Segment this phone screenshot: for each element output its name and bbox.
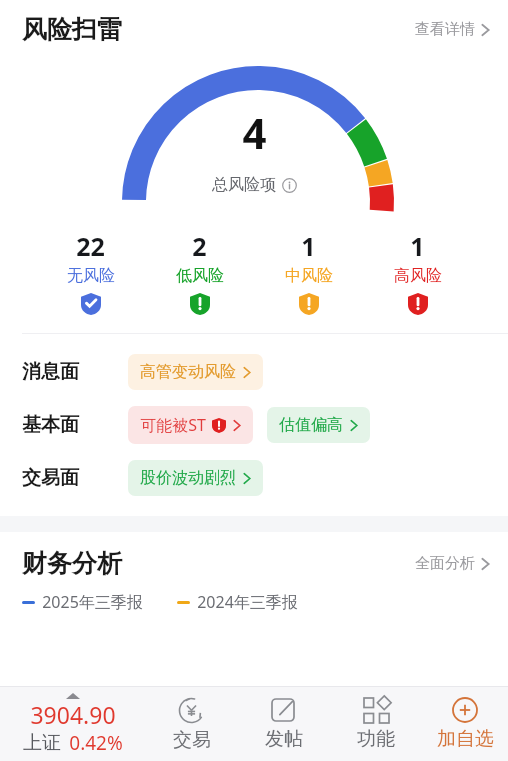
button[interactable]: 功能 [330,698,422,751]
staticText: 1 [301,229,316,263]
staticText: 高管变动风险 [140,362,236,382]
staticText: 股价波动剧烈 [140,468,236,488]
staticText: 2 [192,229,207,263]
staticText: 消息面 [22,360,79,384]
button[interactable]: 说明 [282,178,297,193]
staticText: 财务分析 [22,548,122,579]
staticText: 上证 [23,731,61,755]
staticText: 加自选 [437,727,494,751]
button[interactable]: 加自选 [422,697,508,751]
other: 交易 [178,697,205,724]
button[interactable]: 全面分析 [409,548,496,579]
button[interactable]: 2 [145,229,254,315]
staticText: 可能被ST [140,414,206,436]
staticText: 功能 [357,727,395,751]
staticText: 总风险项 [212,175,276,195]
button[interactable]: 1 [363,229,472,315]
other: 功能 [364,698,389,723]
staticText: 基本面 [22,413,79,437]
button[interactable]: 发帖 [238,697,330,751]
button[interactable]: 22 [36,229,145,315]
staticText: 3904.90 [30,699,116,730]
button[interactable]: 可能被ST [128,406,253,444]
button[interactable]: 查看详情 [409,14,496,45]
button[interactable]: 1 [254,229,363,315]
staticText: 2025年三季报 [42,591,143,613]
staticText: 22 [76,229,105,263]
staticText: 1 [410,229,425,263]
button[interactable]: 交易 [145,697,238,752]
staticText: 交易面 [22,466,79,490]
staticText: 交易 [173,728,211,752]
staticText: 0.42% [69,730,123,756]
staticText: 无风险 [67,266,115,286]
staticText: 发帖 [265,727,303,751]
staticText: 中风险 [285,266,333,286]
staticText: 风险扫雷 [22,14,122,45]
other: 发帖 [271,697,297,723]
staticText: 查看详情 [415,20,475,39]
staticText: 估值偏高 [279,415,343,435]
staticText: 低风险 [176,266,224,286]
button[interactable]: 高管变动风险 [128,354,263,390]
button[interactable]: 股价波动剧烈 [128,460,263,496]
staticText: 高风险 [394,266,442,286]
staticText: 2024年三季报 [197,591,298,613]
button[interactable]: 估值偏高 [267,407,370,443]
staticText: 4 [242,104,267,161]
staticText: 全面分析 [415,554,475,573]
button[interactable]: 3904.90 [0,693,145,756]
